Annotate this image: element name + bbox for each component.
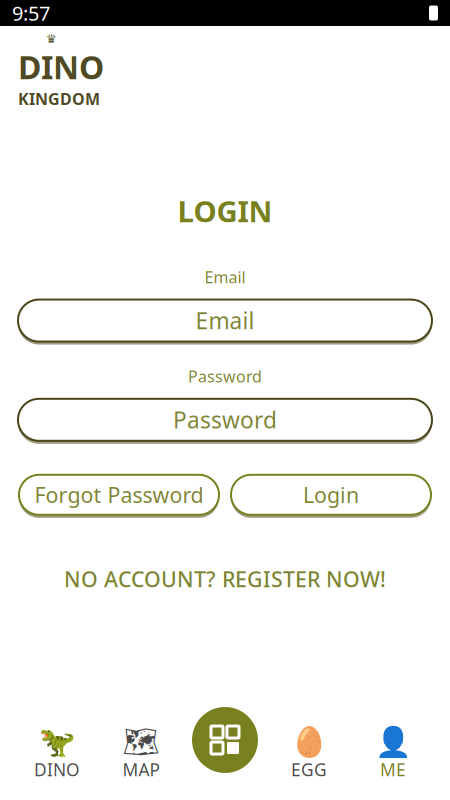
staticText: Password xyxy=(173,405,277,435)
staticText: NO ACCOUNT? REGISTER NOW! xyxy=(64,565,386,593)
staticText: 👤 xyxy=(374,725,411,759)
button[interactable]: Login xyxy=(231,473,431,517)
staticText: Login xyxy=(303,481,359,509)
staticText: DINO xyxy=(18,46,104,88)
button[interactable]: 🦖 xyxy=(15,727,99,783)
staticText: DINO xyxy=(34,758,80,781)
staticText: Forgot Password xyxy=(34,481,203,509)
staticText: ♛ xyxy=(46,32,57,46)
staticText: Email xyxy=(195,305,254,336)
staticText: MAP xyxy=(122,758,159,781)
staticText: EGG xyxy=(291,758,327,781)
staticText: Password xyxy=(188,366,262,387)
staticText: 🥚 xyxy=(290,725,327,759)
button[interactable]: NO ACCOUNT? REGISTER NOW! xyxy=(48,559,402,599)
staticText: KINGDOM xyxy=(18,88,100,109)
staticText: 🦖 xyxy=(38,725,75,759)
button[interactable]: 👤 xyxy=(351,727,435,783)
staticText: ME xyxy=(380,758,406,781)
button[interactable]: 🥚 xyxy=(267,727,351,783)
staticText: LOGIN xyxy=(177,191,272,230)
staticText: Email xyxy=(204,266,245,287)
staticText: 🗺 xyxy=(122,725,159,759)
staticText: 9:57 xyxy=(12,0,50,26)
button[interactable]: 🗺 xyxy=(99,727,183,783)
button[interactable]: Scan QR code xyxy=(189,704,261,776)
button[interactable]: Forgot Password xyxy=(19,473,219,517)
